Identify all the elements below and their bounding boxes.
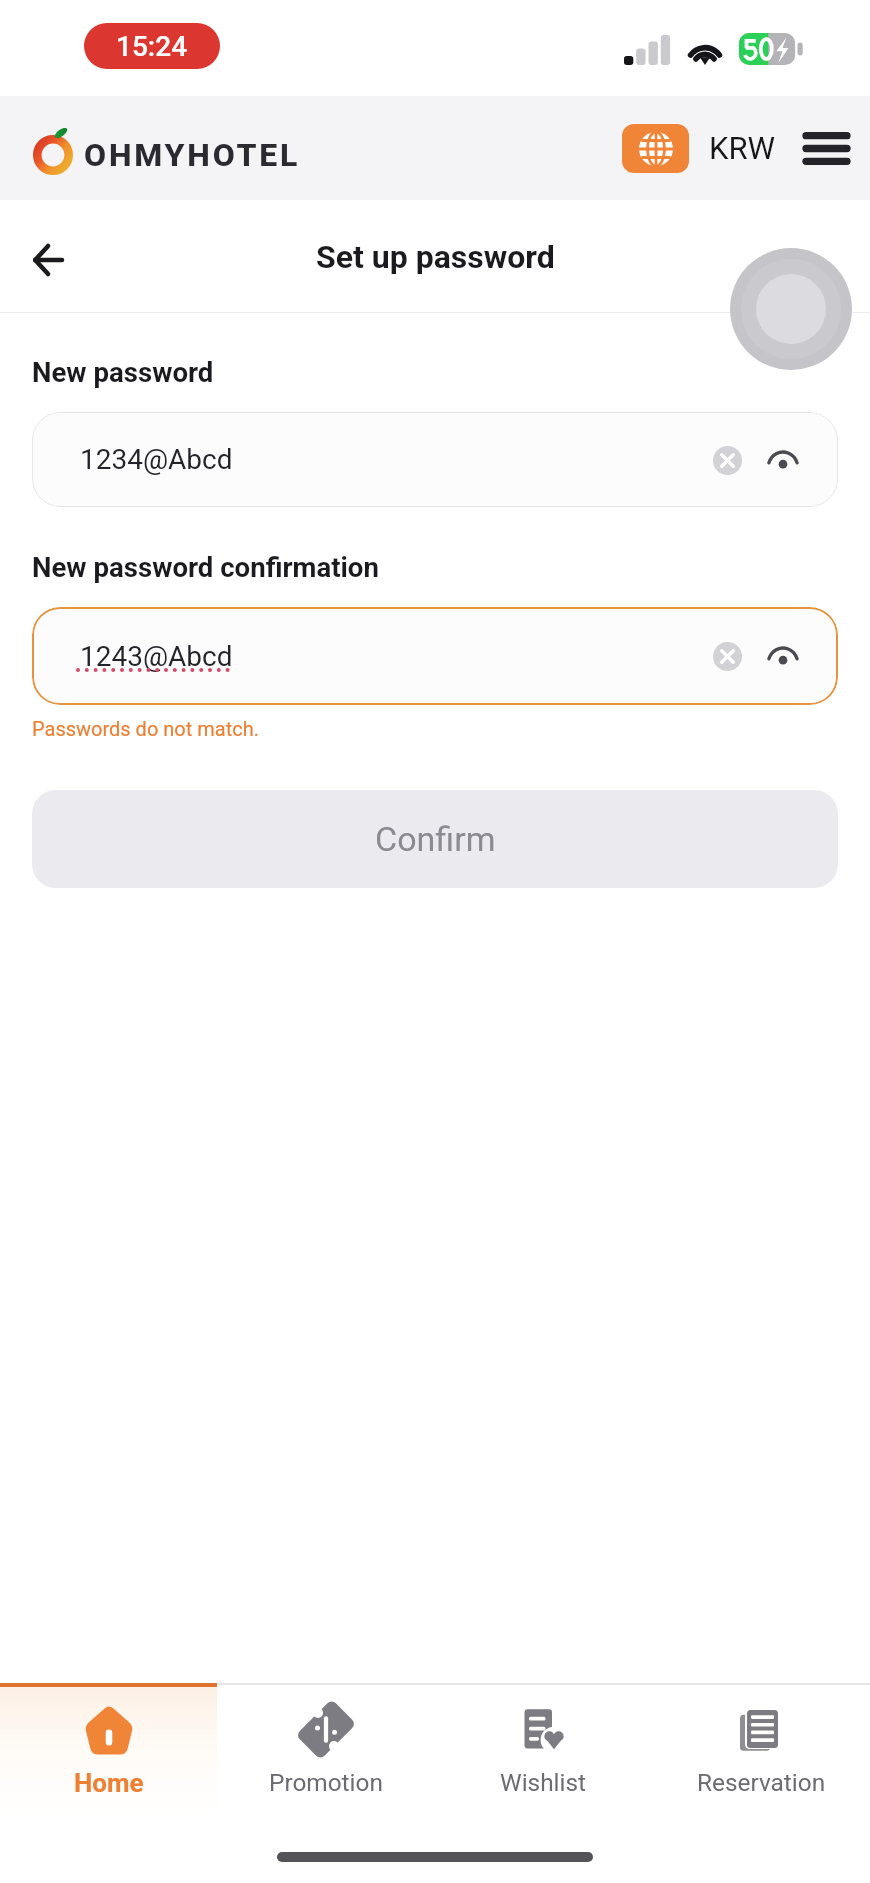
- button[interactable]: KRW: [709, 130, 776, 166]
- button[interactable]: Change language: [622, 124, 689, 173]
- staticText: Promotion: [269, 1768, 383, 1797]
- staticText: OHMYHOTEL: [84, 136, 301, 174]
- button[interactable]: Clear text: [701, 434, 753, 486]
- button[interactable]: Back: [1, 214, 93, 306]
- staticText: Passwords do not match.: [32, 717, 259, 740]
- button[interactable]: Menu: [792, 114, 860, 182]
- staticText: 1234@Abcd: [80, 443, 233, 476]
- button[interactable]: Clear text: [701, 630, 753, 682]
- button[interactable]: Show password: [757, 434, 809, 486]
- button[interactable]: Confirm: [32, 790, 838, 888]
- button[interactable]: Show password: [757, 630, 809, 682]
- staticText: 15:24: [116, 30, 188, 63]
- button[interactable]: 1243@Abcd: [32, 607, 838, 705]
- staticText: Home: [74, 1768, 144, 1798]
- button[interactable]: Home: [0, 1683, 217, 1815]
- staticText: Confirm: [375, 819, 496, 859]
- button[interactable]: Reservation: [652, 1683, 870, 1815]
- button[interactable]: 1234@Abcd: [32, 412, 838, 507]
- button[interactable]: Promotion: [217, 1683, 434, 1815]
- button[interactable]: Wishlist: [434, 1683, 652, 1815]
- staticText: New password: [32, 356, 214, 388]
- staticText: Reservation: [697, 1768, 826, 1797]
- staticText: New password confirmation: [32, 551, 379, 583]
- staticText: Set up password: [316, 238, 555, 276]
- staticText: Wishlist: [500, 1768, 587, 1797]
- staticText: 1243@Abcd: [80, 640, 233, 673]
